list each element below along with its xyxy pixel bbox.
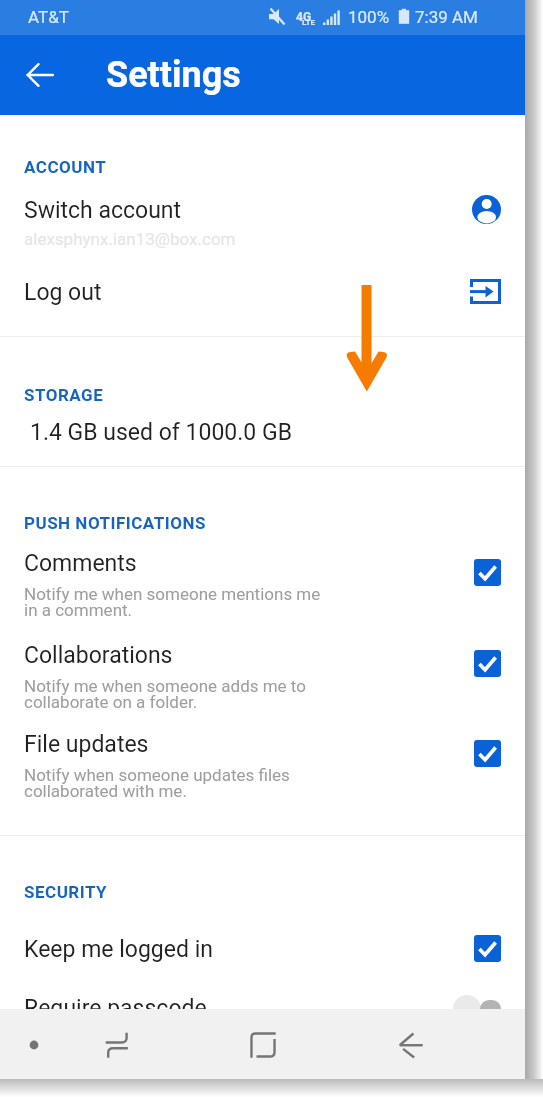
button[interactable]: Toggle setting xyxy=(474,740,501,767)
staticText: Notify when someone updates files collab… xyxy=(24,765,290,802)
staticText: Switch account xyxy=(24,197,182,224)
staticText: Collaborations xyxy=(24,642,173,669)
button[interactable]: Require passcode toggle xyxy=(453,992,501,1026)
staticText: Keep me logged in xyxy=(24,936,213,963)
staticText: Notify me when someone adds me to collab… xyxy=(24,676,306,713)
staticText: File updates xyxy=(24,731,149,758)
button[interactable]: Home xyxy=(237,1019,289,1071)
button[interactable]: Collaborations xyxy=(0,642,525,674)
button[interactable]: Navigate back xyxy=(16,51,64,99)
staticText: ACCOUNT xyxy=(24,157,107,177)
staticText: AT&T xyxy=(28,7,69,27)
staticText: Settings xyxy=(106,54,241,96)
button[interactable]: Switch account xyxy=(0,197,525,229)
button[interactable]: 1.4 GB used of 1000.0 GB xyxy=(0,419,525,452)
button[interactable]: More options xyxy=(8,1019,60,1071)
button[interactable]: Toggle setting xyxy=(474,935,501,962)
button[interactable]: Recent apps xyxy=(90,1019,142,1071)
button[interactable]: Require passcode xyxy=(0,995,525,1027)
button[interactable]: Log out xyxy=(0,279,525,311)
staticText: STORAGE xyxy=(24,385,104,405)
button[interactable]: Keep me logged in xyxy=(0,936,525,968)
staticText: Comments xyxy=(24,550,137,577)
staticText: 100% xyxy=(348,7,390,27)
staticText: 4G xyxy=(296,10,312,24)
staticText: 1.4 GB used of 1000.0 GB xyxy=(30,419,292,446)
button[interactable]: Toggle setting xyxy=(474,559,501,586)
staticText: PUSH NOTIFICATIONS xyxy=(24,513,206,533)
staticText: 7:39 AM xyxy=(415,7,478,27)
staticText: LTE xyxy=(302,18,315,27)
button[interactable]: Back xyxy=(385,1019,437,1071)
button[interactable]: Comments xyxy=(0,550,525,582)
button[interactable]: File updates xyxy=(0,731,525,763)
staticText: Notify me when someone mentions me in a … xyxy=(24,584,321,621)
staticText: alexsphynx.ian13@box.com xyxy=(24,229,236,249)
staticText: Log out xyxy=(24,279,102,306)
staticText: Require passcode xyxy=(24,995,207,1022)
button[interactable]: Toggle setting xyxy=(474,650,501,677)
staticText: SECURITY xyxy=(24,882,108,902)
